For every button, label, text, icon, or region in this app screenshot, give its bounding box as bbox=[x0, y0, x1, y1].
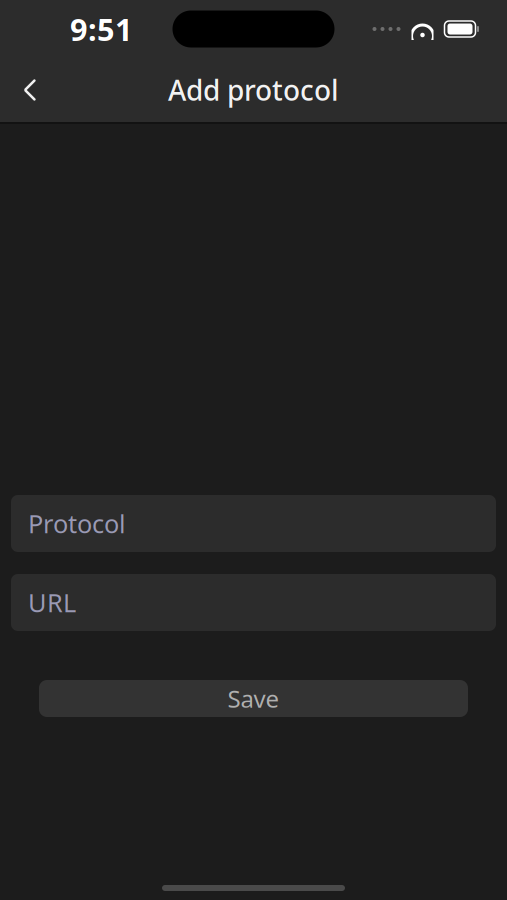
button[interactable]: Save bbox=[39, 680, 468, 717]
button[interactable]: Protocol bbox=[11, 495, 496, 552]
staticText: URL bbox=[28, 586, 76, 619]
button[interactable]: Back bbox=[4, 64, 56, 116]
staticText: 9:51 bbox=[70, 9, 133, 49]
button[interactable]: URL bbox=[11, 574, 496, 631]
staticText: Protocol bbox=[28, 507, 126, 540]
staticText: Save bbox=[227, 683, 279, 714]
staticText: Add protocol bbox=[168, 71, 339, 109]
